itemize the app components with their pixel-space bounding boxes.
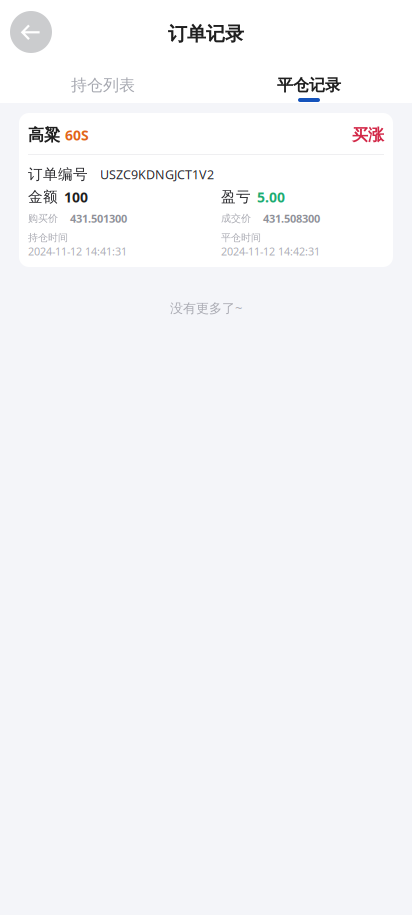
button[interactable]: 平仓记录	[206, 64, 412, 103]
staticText: 100	[64, 187, 88, 207]
staticText: 订单记录	[168, 22, 244, 46]
staticText: 5.00	[257, 187, 285, 207]
staticText: 订单编号	[28, 165, 88, 184]
staticText: 买涨	[352, 125, 384, 145]
button[interactable]: Back	[10, 11, 52, 53]
staticText: 持仓时间	[28, 231, 68, 244]
staticText: 成交价	[221, 212, 251, 225]
staticText: 没有更多了~	[170, 299, 242, 317]
staticText: 平仓记录	[277, 75, 341, 95]
staticText: 购买价	[28, 212, 58, 225]
staticText: 2024-11-12 14:42:31	[221, 244, 320, 259]
button[interactable]: 持仓列表	[0, 64, 206, 103]
staticText: 金额	[28, 188, 58, 206]
staticText: 平仓时间	[221, 231, 261, 244]
staticText: 持仓列表	[71, 75, 135, 95]
staticText: 高粱	[28, 125, 60, 145]
staticText: USZC9KDNGJCT1V2	[100, 166, 214, 183]
staticText: 431.501300	[70, 211, 127, 226]
staticText: 60S	[65, 125, 89, 145]
staticText: 2024-11-12 14:41:31	[28, 244, 127, 259]
staticText: 盈亏	[221, 188, 251, 206]
staticText: 431.508300	[263, 211, 320, 226]
